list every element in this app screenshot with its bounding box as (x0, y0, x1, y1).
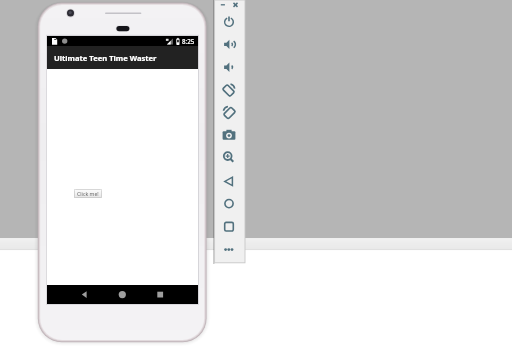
button[interactable]: Zoom (215, 146, 245, 168)
button[interactable]: Take screenshot (215, 124, 245, 146)
staticText: Click me! (77, 190, 99, 197)
button[interactable]: Volume down (215, 56, 245, 78)
button[interactable]: Back (215, 170, 245, 192)
button[interactable]: Power (215, 0, 245, 11)
button[interactable]: Home (215, 192, 245, 214)
button[interactable]: Click me! (74, 189, 102, 198)
button[interactable]: Overview (215, 215, 245, 237)
button[interactable]: More (215, 238, 245, 260)
staticText: 8:25 (182, 37, 195, 45)
button[interactable]: Rotate right (215, 101, 245, 123)
button[interactable]: Overview (148, 285, 172, 304)
button[interactable]: Volume up (215, 33, 245, 55)
staticText: Ultimate Teen Time Waster (54, 53, 157, 63)
button[interactable]: Back (72, 285, 96, 304)
button[interactable]: Home (110, 285, 134, 304)
button[interactable]: Ultimate Teen Time Waster (47, 46, 198, 69)
button[interactable]: Rotate left (215, 78, 245, 100)
